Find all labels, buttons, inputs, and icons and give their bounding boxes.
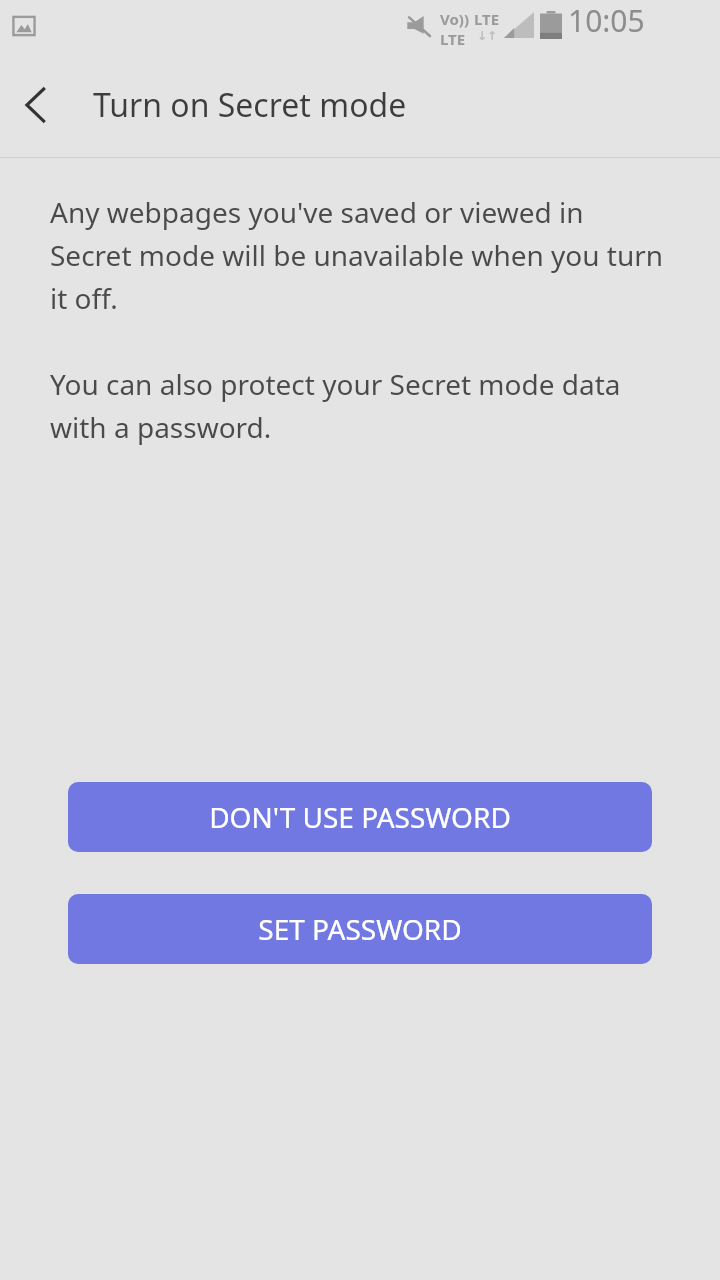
staticText: DON'T USE PASSWORD <box>209 798 511 836</box>
staticText: with a password. <box>50 408 272 446</box>
staticText: it off. <box>50 279 118 317</box>
staticText: Vo)) <box>440 9 469 29</box>
button[interactable]: SET PASSWORD <box>68 894 652 964</box>
staticText: Any webpages you've saved or viewed in <box>50 193 584 231</box>
staticText: LTE <box>440 29 466 49</box>
staticText: Secret mode will be unavailable when you… <box>50 236 664 274</box>
staticText: ↓↑ <box>477 29 498 43</box>
staticText: Turn on Secret mode <box>93 83 407 127</box>
staticText: SET PASSWORD <box>258 910 462 948</box>
staticText: 10:05 p.m. <box>568 0 708 52</box>
button[interactable]: Back <box>0 52 72 157</box>
button[interactable]: DON'T USE PASSWORD <box>68 782 652 852</box>
staticText: LTE <box>474 9 500 29</box>
staticText: You can also protect your Secret mode da… <box>50 365 621 403</box>
